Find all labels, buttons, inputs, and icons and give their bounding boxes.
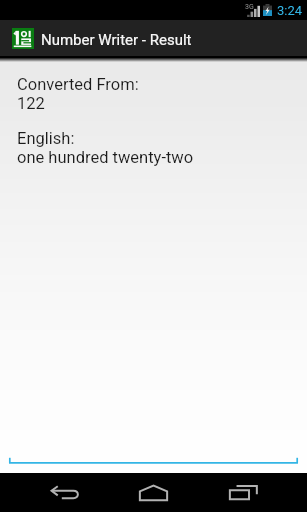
- staticText: Number Writer - Result: [41, 31, 192, 49]
- button[interactable]: Back: [0, 473, 128, 512]
- staticText: one hundred twenty-two: [17, 148, 194, 167]
- button[interactable]: Home: [128, 473, 179, 512]
- staticText: 122: [17, 94, 45, 113]
- staticText: English:: [17, 129, 75, 148]
- staticText: 3G: [245, 3, 254, 11]
- staticText: 3:24: [277, 3, 303, 18]
- button[interactable]: Recent apps: [179, 473, 307, 512]
- staticText: Converted From:: [17, 75, 139, 94]
